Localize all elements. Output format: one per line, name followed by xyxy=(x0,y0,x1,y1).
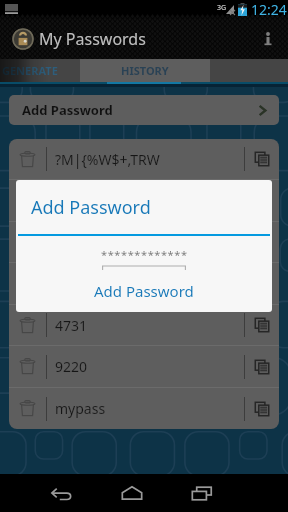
button[interactable] xyxy=(0,59,80,82)
button[interactable]: Copy xyxy=(245,263,279,304)
button[interactable]: Delete xyxy=(9,263,279,304)
button[interactable]: Add Password xyxy=(82,278,206,304)
staticText: Ke3#vQ9z xyxy=(55,191,122,210)
button[interactable]: Back xyxy=(32,474,92,512)
staticText: ?M|{%W$+,TRW xyxy=(55,150,160,169)
button[interactable]: Copy xyxy=(245,388,279,429)
staticText: mypass xyxy=(55,399,106,418)
button[interactable]: Delete xyxy=(9,222,46,262)
button[interactable] xyxy=(80,59,210,82)
staticText: 9220 xyxy=(55,357,88,376)
button[interactable]: Delete xyxy=(9,305,279,345)
button[interactable]: Delete xyxy=(9,305,46,345)
staticText: 3G xyxy=(217,3,227,13)
button[interactable]: Copy xyxy=(245,139,279,179)
staticText: Add Password xyxy=(94,281,194,301)
staticText: My Passwords xyxy=(39,28,146,50)
button[interactable]: Delete xyxy=(9,139,46,179)
staticText: Add Password xyxy=(31,195,151,220)
button[interactable]: Delete xyxy=(9,263,46,304)
button[interactable]: Copy xyxy=(245,180,279,221)
button[interactable]: Delete xyxy=(9,222,279,262)
button[interactable]: Recents xyxy=(172,474,232,512)
button[interactable]: Delete xyxy=(9,180,46,221)
staticText: pass1234 xyxy=(55,233,117,252)
button[interactable]: Delete xyxy=(9,346,46,387)
staticText: ************* xyxy=(101,247,188,262)
button[interactable]: Delete xyxy=(9,180,279,221)
button[interactable]: Info xyxy=(248,19,288,59)
staticText: 4731 xyxy=(55,316,88,335)
button[interactable]: Add Password xyxy=(9,95,279,125)
button[interactable]: Copy xyxy=(245,222,279,262)
button[interactable]: Delete xyxy=(9,388,46,429)
button[interactable]: Delete xyxy=(9,388,279,429)
staticText: HISTORY xyxy=(121,63,169,78)
button[interactable]: Delete xyxy=(9,139,279,179)
button[interactable]: Home xyxy=(102,474,162,512)
staticText: 12:24 xyxy=(251,0,287,19)
staticText: Add Password xyxy=(22,101,113,119)
button[interactable]: Delete xyxy=(9,346,279,387)
button[interactable]: Copy xyxy=(245,305,279,345)
button[interactable]: Copy xyxy=(245,346,279,387)
staticText: Hg7!mTq2 xyxy=(55,274,123,293)
staticText: GENERATE xyxy=(2,63,58,78)
